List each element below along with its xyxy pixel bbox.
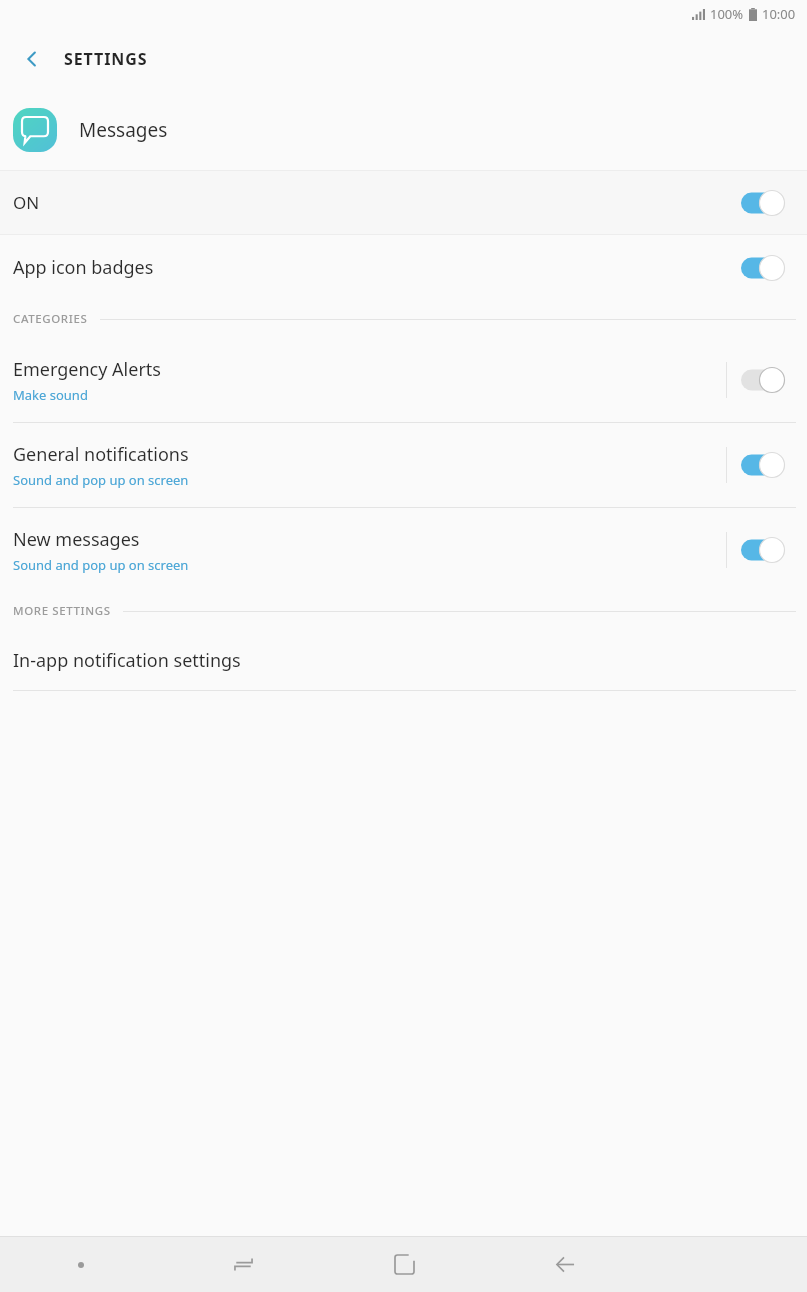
- button[interactable]: Toggle New messages: [727, 537, 799, 563]
- button[interactable]: In-app notification settings: [0, 630, 807, 690]
- button[interactable]: Home: [324, 1237, 485, 1292]
- staticText: CATEGORIES: [13, 311, 88, 327]
- staticText: Sound and pop up on screen: [13, 471, 189, 489]
- button[interactable]: ON: [0, 171, 807, 234]
- staticText: Make sound: [13, 386, 88, 404]
- button[interactable]: Back: [12, 39, 52, 79]
- button[interactable]: Emergency Alerts: [0, 338, 807, 422]
- button[interactable]: App icon badges: [0, 235, 807, 300]
- staticText: Emergency Alerts: [13, 357, 161, 382]
- staticText: In-app notification settings: [13, 648, 241, 673]
- staticText: General notifications: [13, 442, 189, 467]
- button[interactable]: Toggle General notifications: [727, 452, 799, 478]
- staticText: New messages: [13, 527, 140, 552]
- button[interactable]: Messages: [0, 90, 807, 170]
- staticText: ON: [13, 191, 40, 214]
- button[interactable]: Recents: [162, 1237, 324, 1292]
- staticText: MORE SETTINGS: [13, 603, 111, 619]
- button[interactable]: New messages: [0, 508, 807, 592]
- staticText: App icon badges: [13, 255, 154, 280]
- staticText: Sound and pop up on screen: [13, 556, 189, 574]
- button[interactable]: Back: [485, 1237, 646, 1292]
- staticText: Messages: [79, 117, 168, 143]
- button[interactable]: Toggle Emergency Alerts: [727, 367, 799, 393]
- staticText: 100%: [710, 5, 744, 23]
- staticText: 10:00: [762, 5, 796, 23]
- staticText: SETTINGS: [64, 48, 148, 70]
- button[interactable]: General notifications: [0, 423, 807, 507]
